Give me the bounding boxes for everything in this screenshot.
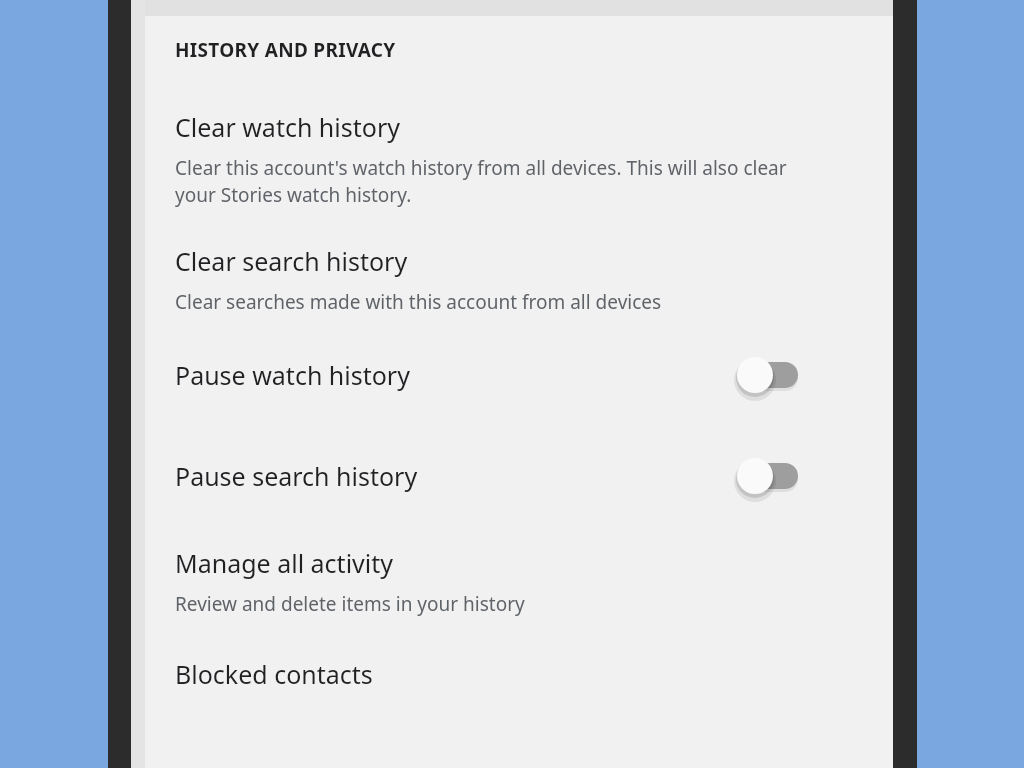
staticText: Pause watch history	[175, 358, 410, 392]
button[interactable]: Blocked contacts	[145, 655, 893, 703]
staticText: Clear watch history	[175, 110, 400, 144]
staticText: Blocked contacts	[175, 657, 373, 691]
staticText: Review and delete items in your history	[175, 591, 525, 617]
other: Pause search history	[736, 454, 800, 498]
button[interactable]: Clear search history	[145, 242, 893, 317]
staticText: Clear searches made with this account fr…	[175, 289, 662, 315]
button[interactable]: Pause search history	[145, 448, 893, 504]
button[interactable]: Pause watch history	[145, 347, 893, 403]
staticText: Pause search history	[175, 459, 418, 493]
button[interactable]: Manage all activity	[145, 544, 893, 619]
other: Pause watch history	[736, 353, 800, 397]
button[interactable]: Clear watch history	[145, 108, 893, 210]
staticText: Clear this account's watch history from …	[175, 155, 801, 208]
staticText: Manage all activity	[175, 546, 394, 580]
staticText: HISTORY AND PRIVACY	[175, 37, 396, 63]
staticText: Clear search history	[175, 244, 408, 278]
